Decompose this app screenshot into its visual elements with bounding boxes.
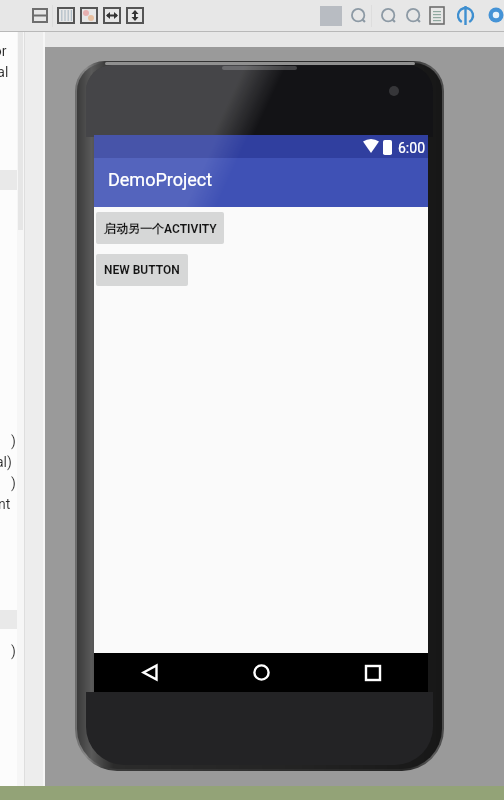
button[interactable]: Zoom bbox=[351, 8, 368, 25]
staticText: ont bbox=[0, 496, 14, 516]
staticText: DemoProject bbox=[108, 169, 213, 190]
staticText: NEW BUTTON bbox=[104, 263, 180, 277]
button[interactable]: Tool bbox=[487, 6, 504, 24]
button[interactable]: Back bbox=[94, 653, 206, 692]
staticText: 启动另一个ACTIVITY bbox=[104, 221, 217, 236]
button[interactable]: Zoom bbox=[381, 8, 398, 25]
button[interactable]: 启动另一个ACTIVITY bbox=[96, 212, 224, 244]
staticText: 6:00 bbox=[398, 140, 425, 156]
button[interactable]: Recents bbox=[317, 653, 428, 692]
staticText: cal bbox=[0, 64, 14, 84]
staticText: zor bbox=[0, 43, 13, 63]
staticText: al) bbox=[0, 454, 16, 474]
button[interactable]: Tool bbox=[430, 7, 444, 24]
button[interactable]: Zoom bbox=[406, 8, 423, 25]
button[interactable]: Tool bbox=[104, 8, 120, 23]
button[interactable]: Tool bbox=[58, 8, 74, 23]
button[interactable]: NEW BUTTON bbox=[96, 254, 188, 286]
staticText: ) bbox=[11, 643, 17, 663]
button[interactable]: Tool bbox=[32, 8, 48, 23]
button[interactable]: Home bbox=[206, 653, 317, 692]
staticText: ) bbox=[11, 475, 17, 495]
button[interactable]: Tool bbox=[81, 8, 97, 23]
staticText: ) bbox=[11, 433, 17, 453]
button[interactable]: Tool bbox=[127, 8, 143, 23]
button[interactable]: Tool bbox=[457, 7, 474, 24]
